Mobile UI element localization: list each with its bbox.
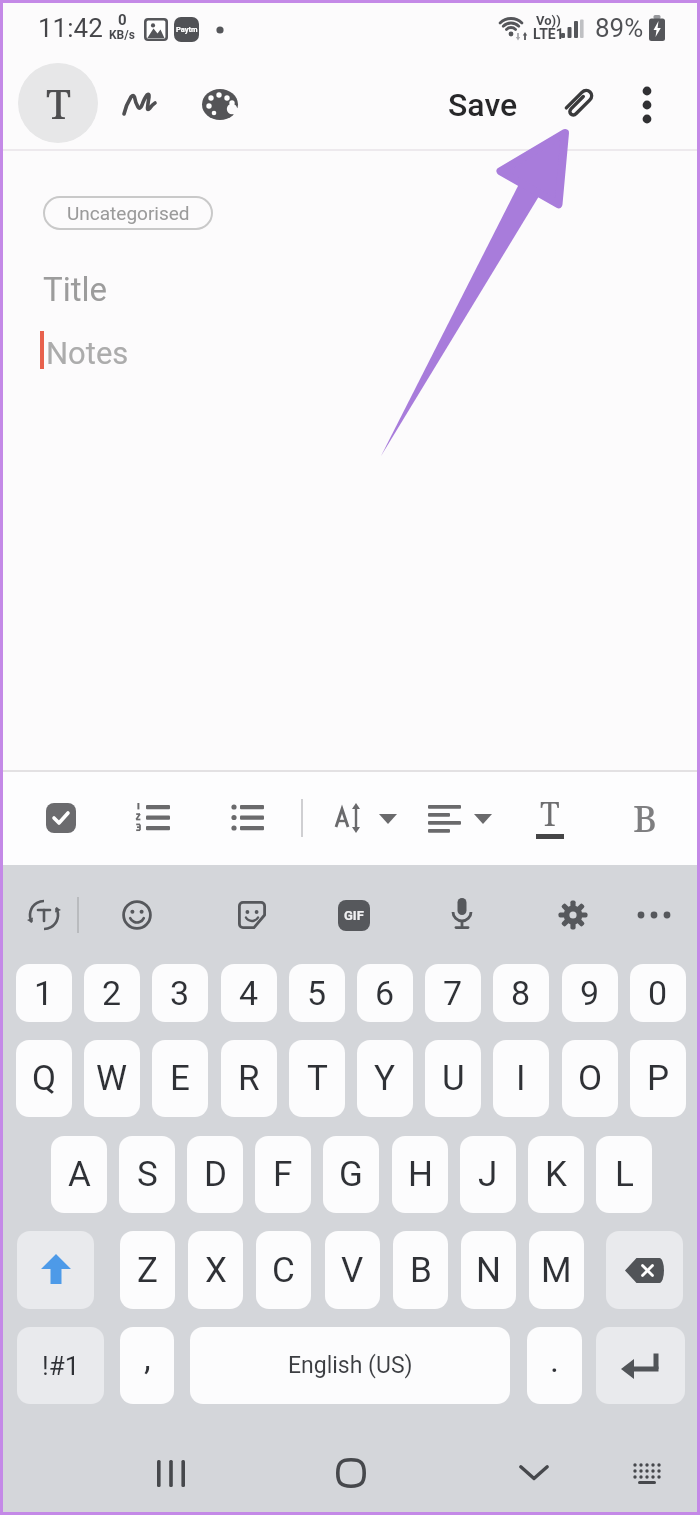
button[interactable]: Y	[357, 1040, 413, 1117]
button[interactable]	[196, 79, 246, 129]
staticText: F	[273, 1154, 293, 1195]
button[interactable]: 4	[221, 964, 277, 1022]
button[interactable]: !#1	[17, 1327, 104, 1404]
button[interactable]: 9	[562, 964, 618, 1022]
staticText: K	[545, 1154, 567, 1195]
button[interactable]: U	[425, 1040, 481, 1117]
staticText: English (US)	[288, 1352, 413, 1379]
staticText: D	[204, 1154, 227, 1195]
button[interactable]: Uncategorised	[43, 196, 213, 230]
button[interactable]: 3	[152, 964, 208, 1022]
button[interactable]: W	[84, 1040, 140, 1117]
staticText: 9	[580, 973, 600, 1013]
staticText: E	[170, 1058, 190, 1099]
staticText: V	[341, 1250, 364, 1291]
button[interactable]: K	[528, 1136, 584, 1213]
button[interactable]	[18, 889, 70, 941]
staticText: 7	[443, 973, 463, 1013]
button[interactable]: S	[119, 1136, 175, 1213]
button[interactable]: P	[630, 1040, 686, 1117]
button[interactable]: O	[562, 1040, 618, 1117]
staticText: L	[615, 1154, 634, 1195]
button[interactable]	[330, 788, 402, 848]
button[interactable]: GIF	[328, 889, 380, 941]
staticText: M	[541, 1250, 572, 1291]
button[interactable]	[111, 889, 163, 941]
button[interactable]: E	[152, 1040, 208, 1117]
button[interactable]: T	[289, 1040, 345, 1117]
staticText: Q	[32, 1058, 57, 1099]
staticText: B	[633, 794, 657, 843]
button[interactable]	[628, 889, 680, 941]
button[interactable]	[606, 1231, 683, 1309]
button[interactable]: R	[221, 1040, 277, 1117]
button[interactable]: A	[51, 1136, 107, 1213]
button[interactable]: 5	[289, 964, 345, 1022]
staticText: C	[272, 1250, 295, 1291]
staticText: U	[442, 1058, 465, 1099]
button[interactable]: M	[529, 1231, 584, 1309]
button[interactable]: 2	[84, 964, 140, 1022]
staticText: .	[550, 1340, 559, 1380]
button[interactable]	[436, 889, 488, 941]
button[interactable]: Z	[120, 1231, 175, 1309]
staticText: LTE1	[533, 26, 564, 42]
button[interactable]	[424, 788, 496, 848]
button[interactable]: N	[461, 1231, 516, 1309]
button[interactable]: V	[325, 1231, 380, 1309]
staticText: GIF	[344, 908, 364, 923]
staticText: W	[96, 1058, 128, 1099]
staticText: 8	[511, 973, 531, 1013]
staticText: R	[238, 1058, 260, 1099]
button[interactable]	[320, 1445, 382, 1501]
button[interactable]	[226, 889, 278, 941]
button[interactable]	[217, 788, 277, 848]
button[interactable]	[503, 1445, 565, 1501]
button[interactable]: F	[255, 1136, 311, 1213]
button[interactable]: Save	[440, 78, 526, 132]
staticText: 0	[118, 11, 127, 29]
button[interactable]: Q	[16, 1040, 72, 1117]
staticText: !#1	[42, 1351, 80, 1381]
button[interactable]: J	[460, 1136, 516, 1213]
button[interactable]: G	[323, 1136, 379, 1213]
button[interactable]: B	[393, 1231, 448, 1309]
button[interactable]	[596, 1327, 685, 1404]
staticText: 2	[102, 973, 122, 1013]
button[interactable]: .	[527, 1327, 582, 1404]
button[interactable]: 8	[493, 964, 549, 1022]
button[interactable]: 6	[357, 964, 413, 1022]
button[interactable]: 0	[630, 964, 686, 1022]
button[interactable]: H	[392, 1136, 448, 1213]
button[interactable]: L	[596, 1136, 652, 1213]
staticText: 5	[307, 973, 327, 1013]
button[interactable]: 7	[425, 964, 481, 1022]
button[interactable]	[31, 788, 91, 848]
button[interactable]	[115, 79, 165, 129]
button[interactable]	[140, 1445, 202, 1501]
button[interactable]: 1	[16, 964, 72, 1022]
button[interactable]	[617, 1445, 677, 1501]
button[interactable]	[550, 76, 606, 132]
button[interactable]: T	[18, 63, 98, 143]
button[interactable]	[547, 889, 599, 941]
button[interactable]	[620, 78, 674, 132]
button[interactable]: X	[188, 1231, 243, 1309]
button[interactable]	[17, 1231, 94, 1309]
staticText: P	[647, 1058, 670, 1099]
button[interactable]: C	[256, 1231, 311, 1309]
staticText: A	[68, 1154, 91, 1195]
button[interactable]: B	[615, 788, 675, 848]
button[interactable]: English (US)	[190, 1327, 510, 1404]
staticText: T	[540, 792, 560, 836]
button[interactable]: D	[187, 1136, 243, 1213]
staticText: I	[516, 1058, 526, 1099]
button[interactable]: ,	[120, 1327, 174, 1404]
staticText: Z	[137, 1250, 158, 1291]
button[interactable]: T	[520, 788, 580, 848]
staticText: X	[205, 1250, 227, 1291]
staticText: J	[478, 1154, 498, 1195]
button[interactable]	[123, 788, 183, 848]
button[interactable]: I	[493, 1040, 549, 1117]
staticText: H	[408, 1154, 433, 1195]
